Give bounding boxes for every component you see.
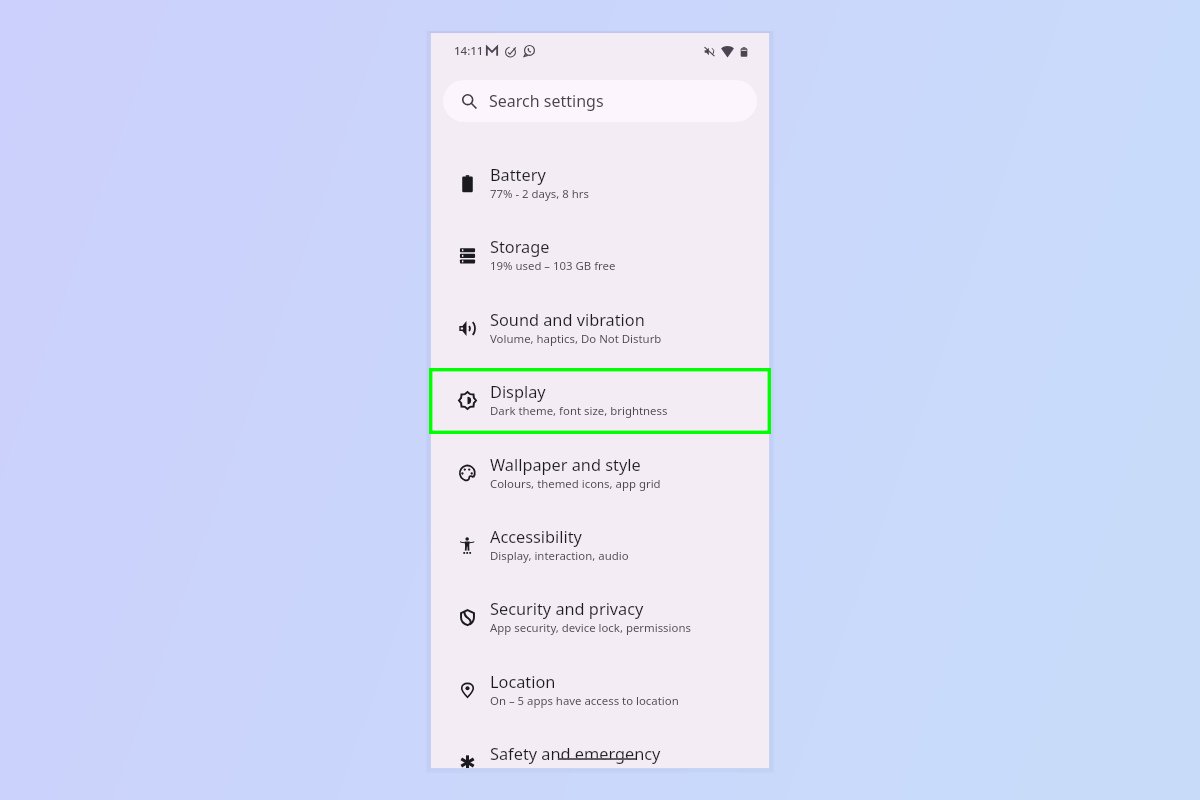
button[interactable]: Accessibility xyxy=(431,507,769,579)
button[interactable]: Battery xyxy=(431,145,769,217)
staticText: Volume, haptics, Do Not Disturb xyxy=(490,331,662,347)
staticText: Location xyxy=(490,671,556,693)
staticText: Storage xyxy=(490,236,550,258)
staticText: Safety and emergency xyxy=(490,743,661,765)
button[interactable]: Safety and emergency xyxy=(431,724,769,768)
staticText: 19% used – 103 GB free xyxy=(490,258,616,274)
button[interactable]: Storage xyxy=(431,217,769,289)
staticText: Colours, themed icons, app grid xyxy=(490,476,661,492)
staticText: App security, device lock, permissions xyxy=(490,620,691,636)
staticText: 14:11 xyxy=(454,43,484,59)
staticText: Security and privacy xyxy=(490,598,644,620)
button[interactable]: Location xyxy=(431,652,769,724)
staticText: On – 5 apps have access to location xyxy=(490,693,679,709)
button[interactable]: Display xyxy=(431,362,769,434)
staticText: Display, interaction, audio xyxy=(490,548,629,564)
staticText: Search settings xyxy=(489,90,604,112)
staticText: Battery xyxy=(490,164,546,186)
staticText: Accessibility xyxy=(490,526,582,548)
button[interactable]: Search settings xyxy=(443,80,757,122)
staticText: 77% - 2 days, 8 hrs xyxy=(490,186,589,202)
button[interactable]: Sound and vibration xyxy=(431,290,769,362)
button[interactable]: Security and privacy xyxy=(431,579,769,651)
button[interactable]: Wallpaper and style xyxy=(431,435,769,507)
staticText: Display xyxy=(490,381,546,403)
staticText: Dark theme, font size, brightness xyxy=(490,403,668,419)
staticText: Wallpaper and style xyxy=(490,454,641,476)
staticText: Sound and vibration xyxy=(490,309,645,331)
